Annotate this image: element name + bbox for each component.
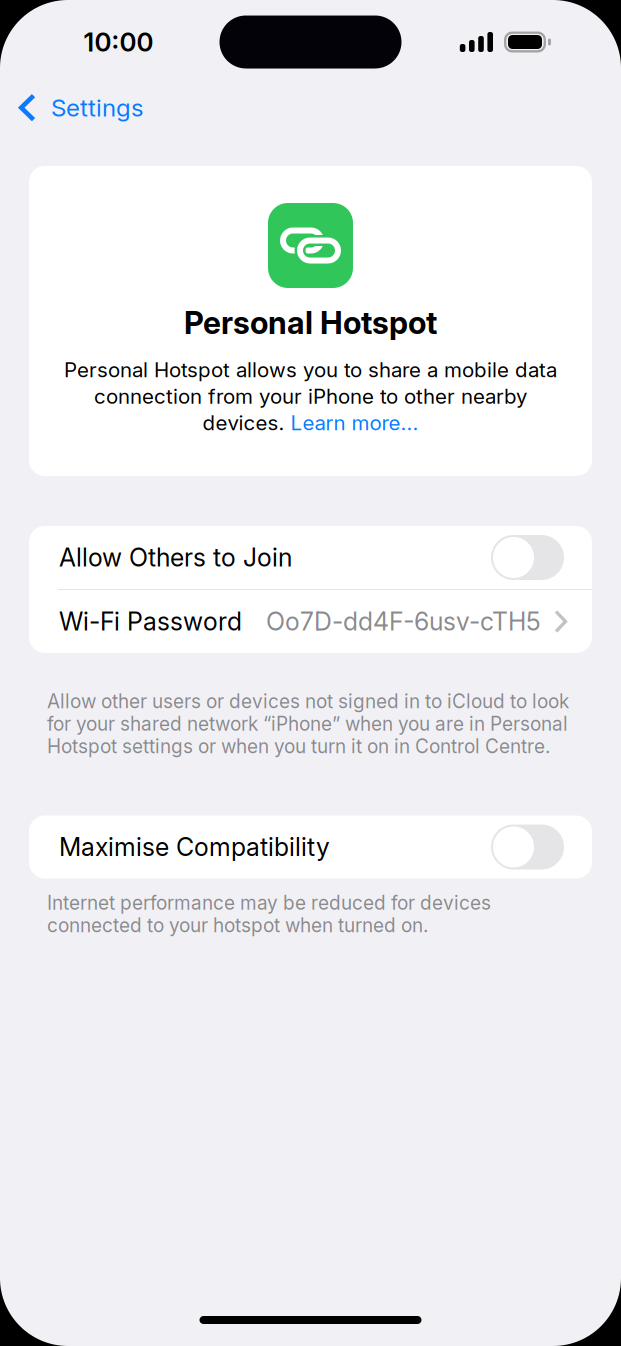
staticText: connected to your hotspot when turned on… [47,914,428,937]
staticText: Settings [51,93,144,122]
staticText: Oo7D-dd4F-6usv-cTH5 [266,606,541,637]
staticText: Wi-Fi Password [59,606,242,637]
staticText: devices. [202,410,290,435]
button[interactable]: Wi-Fi Password [29,590,592,653]
button[interactable]: Allow Others to Join [29,526,592,589]
staticText: Allow Others to Join [59,542,292,573]
staticText: 10:00 [83,26,153,58]
staticText: Internet performance may be reduced for … [47,891,491,914]
staticText: Learn more... [290,410,418,435]
staticText: Hotspot settings or when you turn it on … [47,735,550,758]
button[interactable]: Maximise Compatibility [29,815,592,878]
staticText: for your shared network “iPhone” when yo… [47,712,568,735]
staticText: connection from your iPhone to other nea… [94,384,527,409]
staticText: Personal Hotspot allows you to share a m… [64,357,557,382]
staticText: Personal Hotspot [184,304,437,341]
staticText: Allow other users or devices not signed … [47,690,569,713]
button[interactable]: Settings [0,84,160,131]
staticText: Maximise Compatibility [59,832,330,862]
